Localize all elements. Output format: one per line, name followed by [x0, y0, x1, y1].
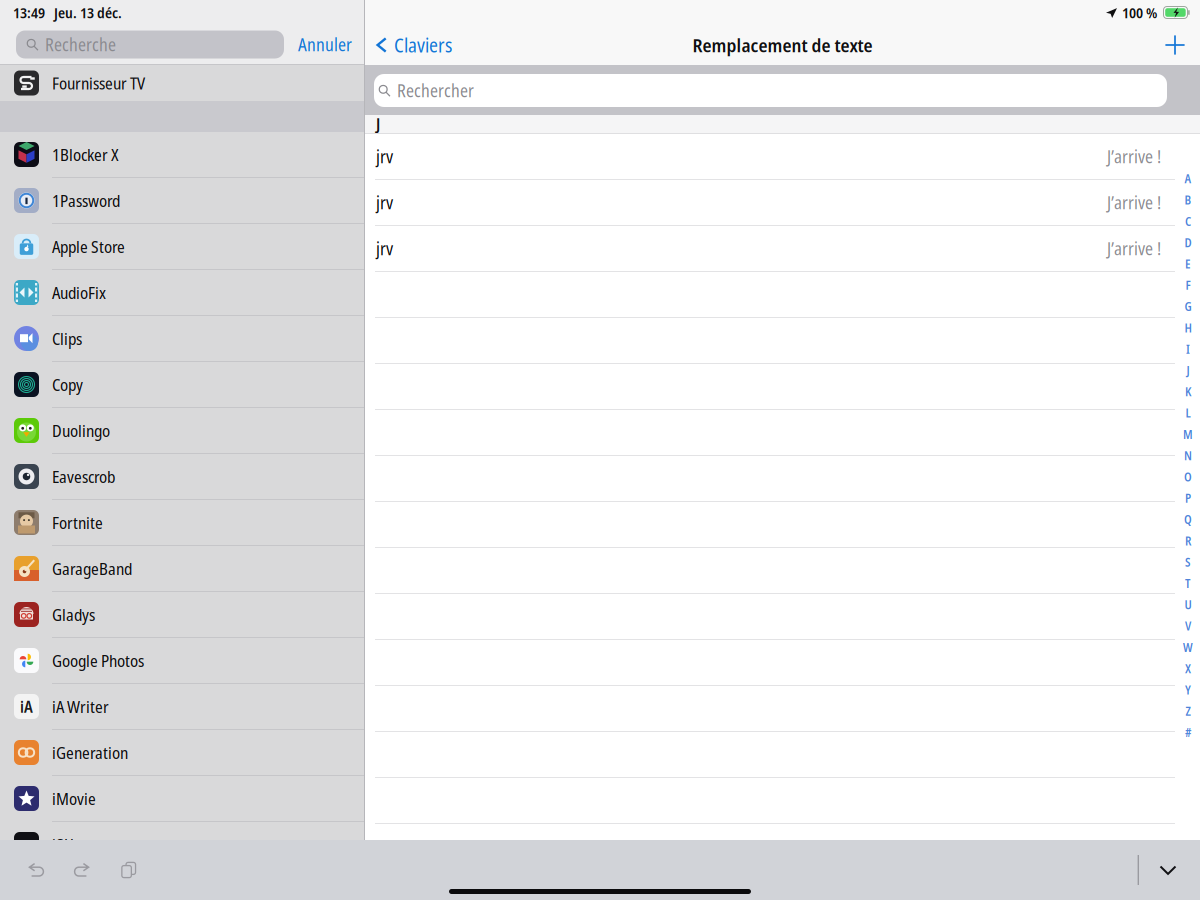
button[interactable]: iSH	[0, 822, 364, 868]
button[interactable]: iGeneration	[0, 730, 364, 776]
staticText: V	[1185, 618, 1191, 634]
button[interactable]: Coller	[105, 840, 151, 900]
staticText: iSH	[52, 833, 74, 856]
staticText: Eavescrob	[52, 465, 115, 488]
staticText: D	[1184, 234, 1191, 251]
staticText: Clips	[52, 327, 82, 350]
staticText: G	[1184, 298, 1191, 315]
staticText: Y	[1185, 682, 1191, 698]
staticText: Recherche	[45, 33, 116, 56]
button[interactable]: Google Photos	[0, 638, 364, 684]
staticText: jrv	[376, 145, 393, 168]
staticText: 1Blocker X	[52, 143, 119, 166]
button[interactable]: Fournisseur TV	[0, 65, 364, 101]
staticText: L	[1185, 405, 1190, 421]
button[interactable]: Annuler la frappe	[13, 840, 59, 900]
button[interactable]: jrv	[365, 180, 1200, 226]
staticText: I	[1186, 341, 1190, 357]
staticText: Fortnite	[52, 511, 103, 534]
staticText: J’arrive !	[1107, 145, 1161, 168]
staticText: J’arrive !	[1107, 237, 1161, 260]
staticText: 100 %	[1122, 2, 1157, 22]
staticText: A	[1184, 170, 1191, 187]
staticText: AudioFix	[52, 281, 106, 304]
staticText: M	[1183, 426, 1193, 442]
button[interactable]: Index alphabétique	[1176, 168, 1200, 743]
staticText: S	[1185, 554, 1191, 570]
button[interactable]: Ajouter un remplacement	[1153, 25, 1200, 65]
button[interactable]: Clips	[0, 316, 364, 362]
button[interactable]: jrv	[365, 134, 1200, 180]
staticText: U	[1184, 596, 1191, 613]
staticText: E	[1185, 256, 1191, 272]
staticText: Q	[1184, 511, 1192, 528]
staticText: Duolingo	[52, 419, 110, 442]
staticText: C	[1185, 213, 1191, 229]
staticText: jrv	[376, 237, 393, 260]
staticText: 13:49	[13, 2, 45, 22]
staticText: iA	[20, 696, 33, 717]
staticText: iMovie	[52, 787, 96, 810]
button[interactable]: GarageBand	[0, 546, 364, 592]
staticText: J	[1186, 362, 1189, 378]
staticText: Remplacement de texte	[692, 32, 872, 58]
staticText: Apple Store	[52, 235, 125, 258]
staticText: B	[1184, 192, 1191, 208]
staticText: Google Photos	[52, 649, 144, 672]
button[interactable]: Eavescrob	[0, 454, 364, 500]
staticText: 1Password	[52, 189, 120, 212]
button[interactable]: Annuler	[284, 26, 364, 62]
staticText: J’arrive !	[1107, 191, 1161, 214]
staticText: T	[1185, 575, 1191, 591]
staticText: Z	[1185, 703, 1190, 719]
button[interactable]: iA	[0, 684, 364, 730]
staticText: X	[1185, 660, 1191, 677]
button[interactable]: Rétablir la frappe	[59, 840, 105, 900]
button[interactable]: Gladys	[0, 592, 364, 638]
staticText: Rechercher	[397, 79, 474, 102]
staticText: J	[376, 113, 380, 135]
staticText: Annuler	[298, 33, 352, 56]
staticText: iA Writer	[52, 695, 109, 718]
staticText: GarageBand	[52, 557, 132, 580]
button[interactable]: 1Password	[0, 178, 364, 224]
button[interactable]: iMovie	[0, 776, 364, 822]
button[interactable]: jrv	[365, 226, 1200, 272]
staticText: W	[1183, 639, 1193, 655]
staticText: Copy	[52, 373, 83, 396]
button[interactable]: Claviers	[365, 25, 460, 65]
staticText: Gladys	[52, 603, 95, 626]
button[interactable]: AudioFix	[0, 270, 364, 316]
button[interactable]: Fortnite	[0, 500, 364, 546]
button[interactable]: Apple Store	[0, 224, 364, 270]
staticText: Jeu. 13 déc.	[54, 2, 122, 22]
staticText: K	[1185, 383, 1191, 400]
staticText: Fournisseur TV	[52, 72, 145, 94]
button[interactable]: Duolingo	[0, 408, 364, 454]
button[interactable]: 1Blocker X	[0, 132, 364, 178]
button[interactable]: Copy	[0, 362, 364, 408]
button[interactable]: Masquer le clavier	[1139, 840, 1197, 900]
staticText: R	[1185, 533, 1191, 549]
staticText: jrv	[376, 191, 393, 214]
staticText: iGeneration	[52, 741, 128, 764]
staticText: O	[1184, 469, 1192, 485]
staticText: N	[1184, 447, 1192, 464]
staticText: F	[1185, 277, 1190, 293]
staticText: Claviers	[394, 32, 452, 58]
staticText: P	[1185, 490, 1191, 506]
staticText: H	[1184, 320, 1191, 336]
staticText: #	[1185, 724, 1191, 741]
